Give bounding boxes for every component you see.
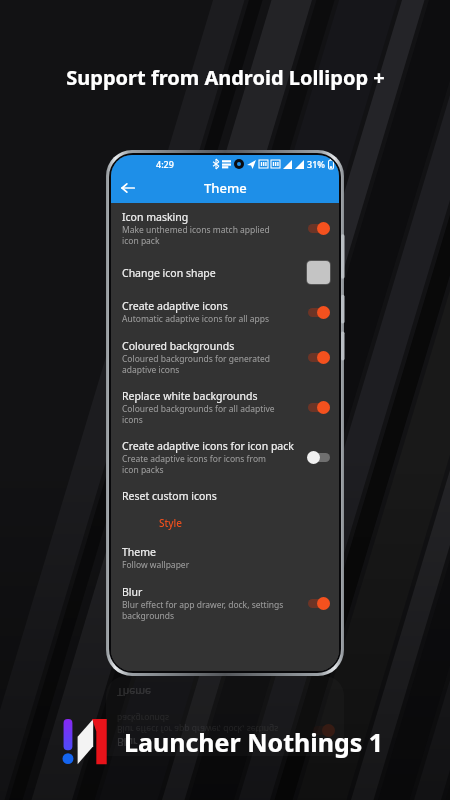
button[interactable]: Toggle off (306, 450, 331, 464)
button[interactable]: Blur (106, 706, 344, 756)
staticText: 31% (307, 158, 325, 170)
button[interactable]: Icon shape (307, 261, 330, 284)
button[interactable]: Toggle on (306, 221, 331, 235)
staticText: Blur effect for app drawer, dock, settin… (117, 713, 279, 735)
staticText: Replace white backgrounds (122, 389, 258, 403)
staticText: Create adaptive icons for icon pack (122, 439, 294, 453)
button[interactable]: Back (115, 175, 141, 201)
staticText: Blur (122, 585, 143, 599)
staticText: Blur effect for app drawer, dock, settin… (122, 599, 284, 621)
staticText: Icon masking (122, 210, 189, 224)
staticText: Change icon shape (122, 266, 216, 280)
staticText: Make unthemed icons match applied icon p… (122, 224, 270, 246)
staticText: Theme (117, 685, 151, 699)
staticText: Coloured backgrounds for generated adapt… (122, 353, 271, 375)
staticText: 4:29 (156, 158, 174, 170)
button[interactable]: Theme (111, 538, 339, 578)
staticText: Automatic adaptive icons for all apps (122, 313, 270, 325)
staticText: Follow wallpaper (117, 683, 185, 685)
staticText: Reset custom icons (122, 489, 217, 503)
staticText: Create adaptive icons for icons from ico… (122, 453, 266, 475)
button[interactable]: Toggle on (306, 400, 331, 414)
staticText: Theme (122, 545, 156, 559)
button[interactable]: Toggle on (306, 596, 331, 610)
button[interactable]: Reset custom icons (111, 482, 339, 510)
button[interactable]: Coloured backgrounds (111, 332, 339, 382)
button[interactable]: Toggle on (306, 350, 331, 364)
button[interactable]: Icon masking (111, 203, 339, 253)
button[interactable]: Create adaptive icons for icon pack (111, 432, 339, 482)
button[interactable]: Change icon shape (111, 253, 339, 292)
staticText: Follow wallpaper (122, 559, 190, 571)
staticText: Blur (117, 735, 138, 749)
staticText: Theme (204, 179, 247, 197)
button[interactable]: Theme (106, 676, 344, 706)
staticText: Create adaptive icons (122, 299, 228, 313)
staticText: Support from Android Lollipop + (66, 64, 385, 91)
staticText: Coloured backgrounds (122, 339, 235, 353)
button[interactable]: Create adaptive icons (111, 292, 339, 332)
button[interactable]: Toggle on (311, 724, 336, 738)
button[interactable]: Toggle on (306, 305, 331, 319)
staticText: Coloured backgrounds for all adaptive ic… (122, 403, 275, 425)
staticText: Style (159, 516, 183, 530)
button[interactable]: Replace white backgrounds (111, 382, 339, 432)
staticText: Launcher Nothings 1 (124, 725, 384, 759)
button[interactable]: Blur (111, 578, 339, 628)
